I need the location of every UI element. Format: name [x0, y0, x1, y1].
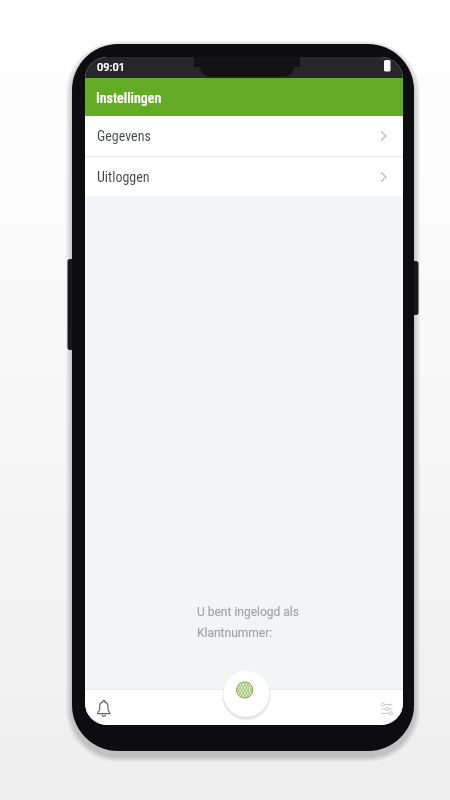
button[interactable] — [381, 703, 393, 715]
button[interactable]: Uitloggen — [85, 157, 403, 196]
staticText: 09:01 — [97, 61, 125, 74]
staticText: U bent ingelogd als — [197, 605, 299, 619]
button[interactable]: Gegevens — [85, 116, 403, 156]
button[interactable] — [223, 671, 271, 719]
staticText: Uitloggen — [97, 169, 150, 185]
staticText: Instellingen — [96, 90, 162, 106]
staticText: Klantnummer: — [197, 626, 273, 640]
staticText: Gegevens — [97, 128, 151, 144]
button[interactable] — [96, 701, 114, 719]
